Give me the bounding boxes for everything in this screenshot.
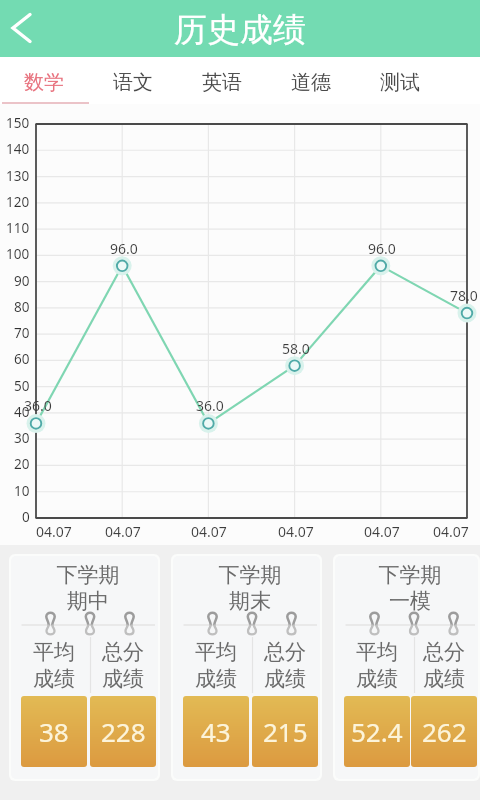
button[interactable]: 语文 — [88, 57, 177, 104]
staticText: 38 — [39, 714, 69, 749]
button[interactable]: 下学期 — [173, 556, 320, 779]
staticText: 58.0 — [282, 339, 310, 358]
staticText: 215 — [263, 714, 308, 749]
button[interactable]: 英语 — [177, 57, 266, 104]
staticText: 平均 — [356, 639, 398, 665]
staticText: 228 — [101, 714, 146, 749]
staticText: 期末 — [182, 588, 318, 614]
button[interactable]: 下学期 — [335, 556, 478, 779]
button[interactable]: 道德 — [266, 57, 355, 104]
button[interactable]: Back — [0, 0, 46, 57]
button[interactable]: 下学期 — [11, 556, 158, 779]
staticText: 成绩 — [423, 666, 465, 692]
staticText: 测试 — [380, 70, 420, 95]
staticText: 262 — [422, 714, 467, 749]
staticText: 成绩 — [33, 666, 75, 692]
staticText: 110 — [6, 219, 30, 237]
staticText: 100 — [6, 245, 30, 263]
staticText: 36.0 — [24, 396, 52, 415]
staticText: 期中 — [20, 588, 156, 614]
staticText: 30 — [14, 429, 30, 447]
staticText: 60 — [14, 350, 30, 368]
staticText: 43 — [201, 714, 231, 749]
staticText: 平均 — [195, 639, 237, 665]
staticText: 04.07 — [36, 522, 72, 541]
staticText: 数学 — [24, 70, 64, 95]
staticText: 历史成绩 — [174, 9, 306, 51]
staticText: 20 — [14, 455, 30, 473]
staticText: 平均 — [33, 639, 75, 665]
button[interactable]: 数学 — [0, 57, 88, 104]
staticText: 成绩 — [102, 666, 144, 692]
staticText: 04.07 — [364, 522, 400, 541]
staticText: 下学期 — [20, 562, 156, 588]
staticText: 一模 — [344, 588, 476, 614]
button[interactable]: 测试 — [355, 57, 444, 104]
staticText: 40 — [14, 403, 30, 421]
staticText: 96.0 — [110, 239, 138, 258]
staticText: 140 — [6, 140, 30, 158]
staticText: 50 — [14, 377, 30, 395]
staticText: 成绩 — [356, 666, 398, 692]
staticText: 96.0 — [368, 239, 396, 258]
staticText: 150 — [6, 114, 30, 132]
staticText: 0 — [22, 508, 30, 526]
staticText: 道德 — [291, 70, 331, 95]
staticText: 总分 — [423, 639, 465, 665]
staticText: 120 — [6, 193, 30, 211]
staticText: 成绩 — [195, 666, 237, 692]
staticText: 10 — [14, 482, 30, 500]
staticText: 90 — [14, 272, 30, 290]
staticText: 80 — [14, 298, 30, 316]
staticText: 04.07 — [278, 522, 314, 541]
staticText: 总分 — [264, 639, 306, 665]
staticText: 英语 — [202, 70, 242, 95]
staticText: 70 — [14, 324, 30, 342]
staticText: 52.4 — [351, 714, 403, 749]
staticText: 总分 — [102, 639, 144, 665]
staticText: 36.0 — [196, 396, 224, 415]
staticText: 78.0 — [450, 286, 478, 305]
staticText: 下学期 — [182, 562, 318, 588]
staticText: 04.07 — [433, 522, 469, 541]
staticText: 下学期 — [344, 562, 476, 588]
staticText: 成绩 — [264, 666, 306, 692]
staticText: 04.07 — [191, 522, 227, 541]
staticText: 04.07 — [105, 522, 141, 541]
staticText: 语文 — [113, 70, 153, 95]
staticText: 130 — [6, 167, 30, 185]
